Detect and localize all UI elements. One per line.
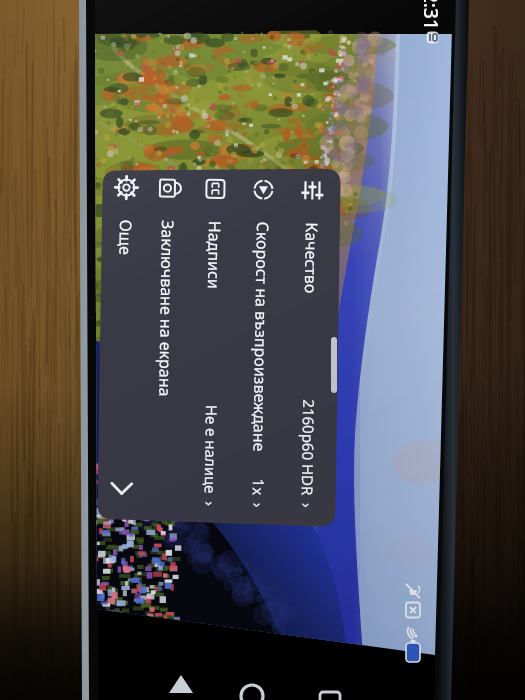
button[interactable]: Phone showing YouTube settings [0, 0, 525, 700]
